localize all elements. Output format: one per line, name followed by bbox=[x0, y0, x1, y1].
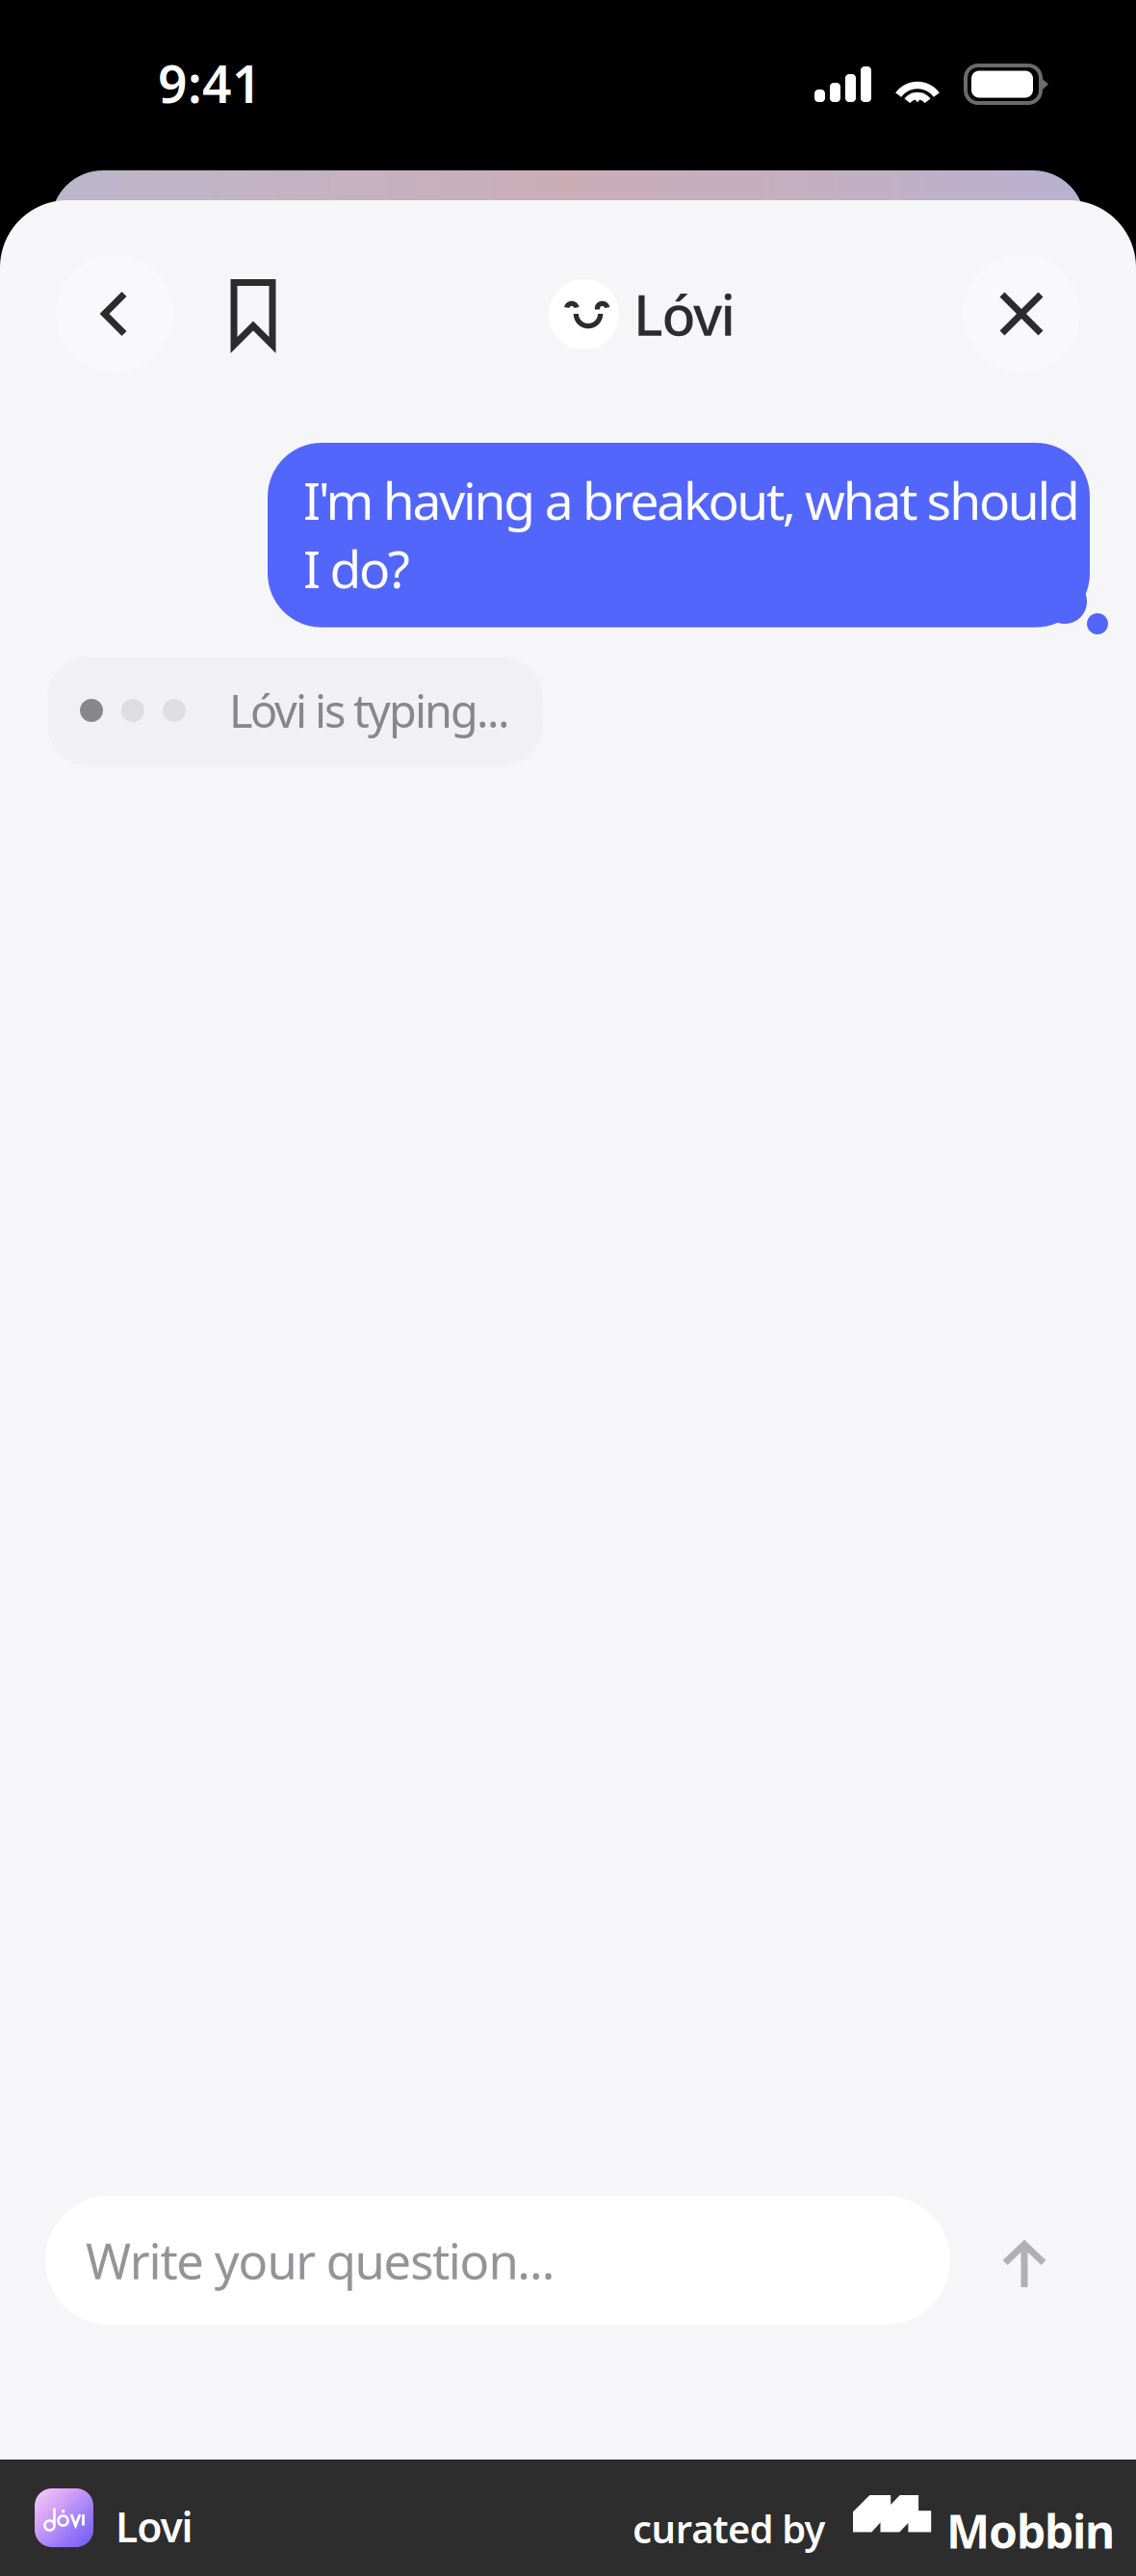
staticText: I'm having a breakout, what should I do? bbox=[303, 466, 1080, 602]
staticText: Lovi bbox=[116, 2499, 193, 2554]
staticText: Lóvi is typing... bbox=[229, 681, 510, 740]
button[interactable]: Send bbox=[967, 2196, 1082, 2336]
button[interactable]: Save bbox=[201, 262, 305, 366]
staticText: Mobbin bbox=[946, 2500, 1115, 2561]
button[interactable]: Back bbox=[56, 255, 173, 373]
staticText: Write your question... bbox=[86, 2228, 555, 2293]
staticText: curated by bbox=[633, 2503, 826, 2554]
button[interactable]: Close bbox=[963, 255, 1080, 373]
staticText: 9:41 bbox=[158, 49, 262, 117]
button[interactable]: Write your question... bbox=[45, 2196, 950, 2325]
staticText: Lóvi bbox=[633, 278, 735, 351]
